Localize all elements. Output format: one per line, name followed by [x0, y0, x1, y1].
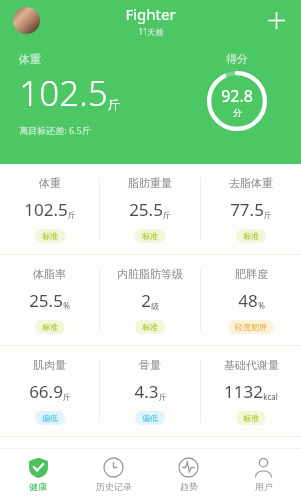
staticText: 斤	[108, 97, 120, 112]
staticText: 标准	[42, 231, 58, 241]
staticText: 66.9	[29, 380, 63, 403]
button[interactable]: 基础代谢量	[201, 346, 301, 436]
staticText: 内脏脂肪等级	[117, 267, 183, 281]
button[interactable]: 趋势	[151, 449, 226, 499]
staticText: 去脂体重	[229, 176, 273, 190]
button[interactable]: 历史记录	[76, 449, 151, 499]
button[interactable]: 肌肉量	[0, 346, 99, 436]
staticText: Fighter	[125, 4, 176, 24]
staticText: 92.8	[221, 85, 253, 107]
staticText: 脂肪重量	[128, 176, 172, 190]
staticText: 102.5	[19, 69, 108, 117]
staticText: 得分	[226, 52, 248, 66]
staticText: 健康	[29, 481, 47, 492]
staticText: 斤	[264, 210, 272, 220]
staticText: 标准	[142, 231, 158, 241]
staticText: 11天前	[138, 26, 164, 37]
staticText: 骨量	[139, 358, 161, 372]
staticText: 标准	[243, 413, 259, 423]
staticText: 历史记录	[96, 481, 132, 492]
button[interactable]: 体重	[0, 164, 99, 254]
button[interactable]: 用户	[226, 449, 301, 499]
button[interactable]: 体脂率	[0, 255, 99, 345]
staticText: 斤	[159, 392, 167, 402]
staticText: 体重	[19, 52, 41, 66]
staticText: 体脂率	[33, 267, 66, 281]
staticText: %	[63, 300, 70, 311]
staticText: 25.5	[29, 289, 63, 312]
staticText: 斤	[68, 210, 76, 220]
staticText: 趋势	[180, 481, 198, 492]
staticText: 斤	[163, 210, 171, 220]
button[interactable]: 内脏脂肪等级	[100, 255, 200, 345]
staticText: 基础代谢量	[224, 358, 279, 372]
staticText: 肥胖度	[235, 267, 268, 281]
staticText: 4.3	[134, 380, 159, 403]
button[interactable]: Add record	[260, 4, 292, 36]
staticText: 25.5	[129, 198, 163, 221]
staticText: 级	[151, 301, 159, 311]
staticText: 体重	[39, 176, 61, 190]
staticText: 分	[233, 107, 242, 118]
staticText: kcal	[263, 391, 278, 402]
button[interactable]: 骨量	[100, 346, 200, 436]
staticText: 偏低	[42, 413, 58, 423]
staticText: 标准	[243, 231, 259, 241]
staticText: 标准	[42, 322, 58, 332]
button[interactable]: 健康	[0, 449, 76, 499]
button[interactable]: 去脂体重	[201, 164, 301, 254]
staticText: 偏低	[142, 413, 158, 423]
button[interactable]: 肥胖度	[201, 255, 301, 345]
staticText: 102.5	[24, 198, 68, 221]
staticText: 肌肉量	[33, 358, 66, 372]
button[interactable]: Profile avatar	[13, 7, 40, 34]
staticText: 1132	[224, 380, 263, 403]
staticText: 标准	[142, 322, 158, 332]
staticText: 2	[141, 289, 151, 312]
staticText: 离目标还差: 6.5斤	[19, 124, 91, 136]
staticText: 48	[238, 289, 258, 312]
staticText: 斤	[63, 392, 71, 402]
staticText: 77.5	[230, 198, 264, 221]
button[interactable]: 脂肪重量	[100, 164, 200, 254]
staticText: %	[258, 300, 265, 311]
staticText: 轻度肥胖	[235, 322, 267, 332]
staticText: 用户	[255, 481, 273, 492]
